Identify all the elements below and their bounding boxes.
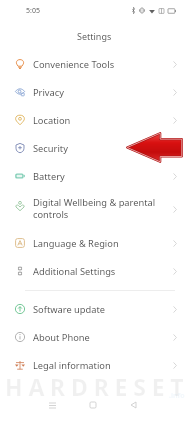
staticText: Language & Region: [33, 237, 173, 250]
button[interactable]: Privacy: [0, 78, 189, 106]
staticText: Legal information: [33, 359, 173, 372]
staticText: About Phone: [33, 331, 173, 344]
staticText: Security: [33, 142, 173, 155]
button[interactable]: About Phone: [0, 323, 189, 351]
button[interactable]: Battery: [0, 162, 189, 190]
staticText: Convenience Tools: [33, 58, 173, 71]
button[interactable]: Digital Wellbeing & parental controls: [0, 190, 189, 229]
staticText: Settings: [77, 30, 112, 42]
button[interactable]: Convenience Tools: [0, 50, 189, 78]
staticText: 5:05: [26, 6, 40, 16]
staticText: Digital Wellbeing & parental controls: [33, 196, 173, 221]
staticText: HARDRESET: [5, 371, 189, 402]
button[interactable]: Back: [123, 395, 143, 415]
button[interactable]: Security: [0, 134, 189, 162]
staticText: Software update: [33, 303, 173, 316]
staticText: .info: [169, 391, 185, 401]
staticText: Location: [33, 114, 173, 127]
button[interactable]: Home: [83, 395, 103, 415]
button[interactable]: Software update: [0, 295, 189, 323]
staticText: Battery: [33, 170, 173, 183]
button[interactable]: Location: [0, 106, 189, 134]
button[interactable]: Additional Settings: [0, 257, 189, 285]
button[interactable]: Legal information: [0, 351, 189, 379]
staticText: Privacy: [33, 86, 173, 99]
staticText: Additional Settings: [33, 265, 173, 278]
button[interactable]: Recents: [42, 395, 62, 415]
button[interactable]: Language & Region: [0, 229, 189, 257]
